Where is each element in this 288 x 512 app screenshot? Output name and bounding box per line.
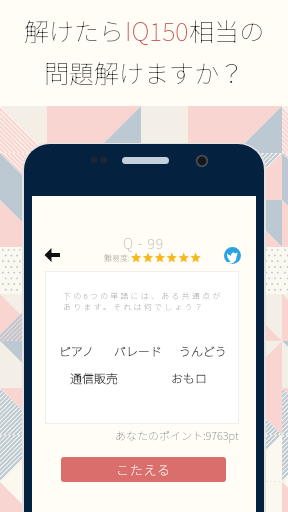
staticText: 下の6つの単語には、ある共通点が あります。それは何でしょう？ — [63, 290, 223, 312]
staticText: うんどう — [179, 342, 227, 359]
staticText: こたえる — [116, 460, 171, 479]
staticText: おもロ — [171, 369, 208, 386]
staticText: IQ150 — [125, 12, 189, 48]
staticText: 相当の — [189, 12, 265, 48]
staticText: 通信販売 — [70, 369, 119, 386]
staticText: ピアノ — [59, 342, 94, 359]
button[interactable]: Back — [41, 244, 63, 266]
button[interactable]: こたえる — [61, 457, 226, 482]
staticText: 問題解けますか？ — [44, 54, 245, 90]
staticText: 解けたら — [24, 12, 125, 48]
button[interactable]: Share on Twitter — [221, 244, 243, 266]
staticText: 難易度: — [104, 252, 130, 264]
staticText: あなたのポイント:9763pt — [115, 427, 239, 443]
staticText: パレード — [114, 342, 163, 359]
staticText: Q - 99 — [123, 233, 165, 253]
